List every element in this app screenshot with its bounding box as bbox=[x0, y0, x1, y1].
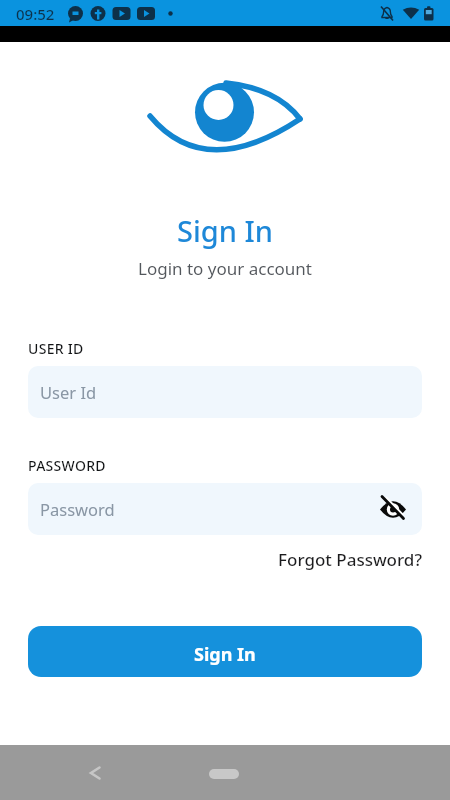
staticText: Sign In bbox=[194, 642, 256, 667]
button[interactable] bbox=[379, 495, 407, 523]
staticText: Sign In bbox=[0, 211, 450, 250]
button[interactable] bbox=[209, 769, 239, 779]
staticText: 09:52 bbox=[16, 4, 55, 24]
button[interactable]: Password bbox=[28, 483, 422, 535]
staticText: User Id bbox=[40, 381, 97, 403]
button[interactable]: Sign In bbox=[28, 626, 422, 677]
button[interactable] bbox=[88, 765, 102, 781]
staticText: USER ID bbox=[28, 339, 84, 358]
staticText: PASSWORD bbox=[28, 456, 106, 475]
staticText: Login to your account bbox=[0, 257, 450, 280]
button[interactable]: User Id bbox=[28, 366, 422, 418]
button[interactable]: Forgot Password? bbox=[0, 548, 422, 571]
staticText: Password bbox=[40, 498, 115, 520]
